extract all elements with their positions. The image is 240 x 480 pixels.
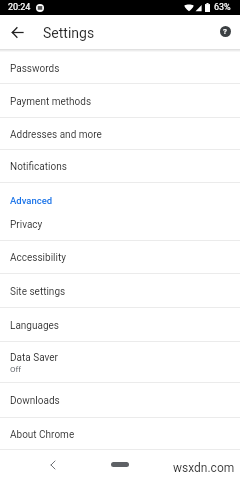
- staticText: Payment methods: [10, 96, 92, 108]
- staticText: Downloads: [10, 395, 60, 407]
- staticText: Data Saver: [10, 352, 58, 364]
- staticText: Languages: [10, 320, 59, 332]
- button[interactable]: Site settings: [0, 274, 240, 307]
- button[interactable]: Help and feedback: [213, 19, 237, 43]
- button[interactable]: Back: [44, 456, 62, 474]
- button[interactable]: Addresses and more: [0, 118, 240, 149]
- staticText: Passwords: [10, 63, 60, 75]
- button[interactable]: Notifications: [0, 150, 240, 182]
- staticText: Privacy: [10, 219, 43, 231]
- staticText: Off: [10, 365, 22, 374]
- button[interactable]: Passwords: [0, 52, 240, 83]
- button[interactable]: About Chrome: [0, 418, 240, 449]
- button[interactable]: Data Saver: [0, 342, 240, 382]
- staticText: Addresses and more: [10, 129, 102, 141]
- button[interactable]: Downloads: [0, 383, 240, 417]
- staticText: 20:24: [8, 2, 31, 13]
- staticText: wsxdn.com: [173, 461, 235, 475]
- staticText: Accessibility: [10, 252, 66, 264]
- button[interactable]: Payment methods: [0, 84, 240, 117]
- staticText: Site settings: [10, 286, 66, 298]
- button[interactable]: Home: [111, 462, 129, 467]
- staticText: Advanced: [10, 195, 53, 206]
- staticText: Notifications: [10, 161, 67, 173]
- button[interactable]: Privacy: [0, 207, 240, 240]
- button[interactable]: Accessibility: [0, 241, 240, 273]
- staticText: ?: [223, 27, 227, 36]
- button[interactable]: Languages: [0, 308, 240, 341]
- button[interactable]: Navigate up: [5, 20, 29, 44]
- staticText: Settings: [43, 25, 95, 41]
- staticText: 63%: [214, 2, 231, 13]
- staticText: About Chrome: [10, 429, 75, 441]
